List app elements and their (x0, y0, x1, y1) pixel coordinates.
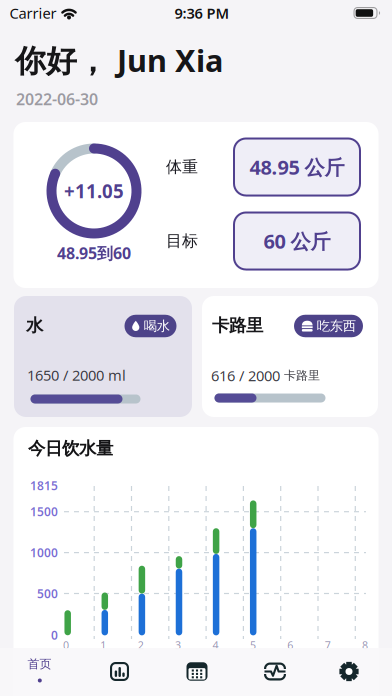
staticText: 1500 (30, 504, 58, 520)
staticText: 48.95到60 (57, 242, 131, 264)
staticText: 500 (37, 585, 58, 601)
staticText: 0 (51, 627, 58, 643)
staticText: 1650 / 2000 ml (27, 365, 126, 385)
staticText: 48.95 公斤 (249, 154, 344, 180)
button[interactable] (158, 646, 236, 696)
staticText: 7 (325, 638, 331, 652)
button[interactable]: 吃东西 (294, 315, 363, 337)
staticText: 6 (287, 638, 293, 652)
staticText: 目标 (166, 231, 198, 251)
staticText: 5 (250, 638, 256, 652)
staticText: 水 (26, 315, 43, 336)
staticText: Carrier (9, 3, 56, 23)
staticText: 9:36 PM (174, 3, 229, 23)
staticText: 1 (100, 638, 106, 652)
staticText: 8 (362, 638, 368, 652)
button[interactable]: 48.95 公斤 (233, 137, 361, 196)
staticText: 3 (175, 638, 181, 652)
staticText: 首页 (27, 657, 51, 671)
staticText: 吃东西 (317, 318, 356, 334)
staticText: 4 (212, 638, 218, 652)
staticText: +11.05 (64, 179, 124, 203)
button[interactable]: 首页 (0, 646, 79, 696)
staticText: 卡路里 (212, 315, 263, 336)
staticText: 1000 (30, 545, 58, 560)
button[interactable]: 喝水 (124, 315, 176, 337)
staticText: 2 (138, 638, 144, 652)
staticText: 60 公斤 (263, 228, 330, 254)
staticText: 1815 (30, 478, 58, 493)
staticText: 你好， Jun Xia (15, 40, 223, 80)
staticText: 卡路里 (284, 368, 320, 383)
staticText: 616 / 2000 (211, 366, 280, 385)
button[interactable]: 60 公斤 (233, 211, 361, 270)
staticText: 今日饮水量 (28, 438, 113, 459)
button[interactable] (80, 646, 158, 696)
staticText: 体重 (166, 157, 198, 177)
staticText: 2022-06-30 (16, 88, 98, 110)
staticText: 喝水 (144, 318, 170, 334)
button[interactable] (236, 646, 314, 696)
staticText: 0 (63, 638, 69, 652)
button[interactable] (310, 646, 388, 696)
